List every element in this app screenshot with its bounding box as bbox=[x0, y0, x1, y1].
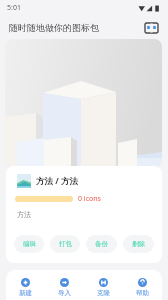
button[interactable]: 打包 bbox=[50, 235, 80, 253]
button[interactable]: 新建 bbox=[6, 270, 45, 300]
button[interactable]: 编辑 bbox=[14, 235, 44, 253]
staticText: 打包 bbox=[59, 240, 72, 248]
staticText: 方法 / 方法 bbox=[36, 175, 78, 187]
staticText: 克隆 bbox=[97, 289, 110, 297]
button[interactable]: 克隆 bbox=[84, 270, 123, 300]
staticText: 备份 bbox=[95, 240, 108, 248]
staticText: 5:01 bbox=[7, 3, 21, 13]
button[interactable]: 教程 bbox=[142, 19, 160, 37]
staticText: 帮助 bbox=[136, 289, 149, 297]
staticText: 新建 bbox=[19, 289, 32, 297]
staticText: 0 icons bbox=[78, 194, 101, 204]
staticText: 导入 bbox=[58, 289, 71, 297]
button[interactable]: 删除 bbox=[123, 235, 154, 253]
staticText: 编辑 bbox=[23, 240, 36, 248]
button[interactable]: 方法 / 方法 bbox=[6, 166, 162, 263]
button[interactable]: 导入 bbox=[45, 270, 84, 300]
button[interactable]: 备份 bbox=[86, 235, 117, 253]
staticText: 随时随地做你的图标包 bbox=[9, 22, 99, 33]
staticText: 方法 bbox=[17, 210, 31, 219]
staticText: 删除 bbox=[132, 240, 145, 248]
button[interactable]: 帮助 bbox=[123, 270, 162, 300]
